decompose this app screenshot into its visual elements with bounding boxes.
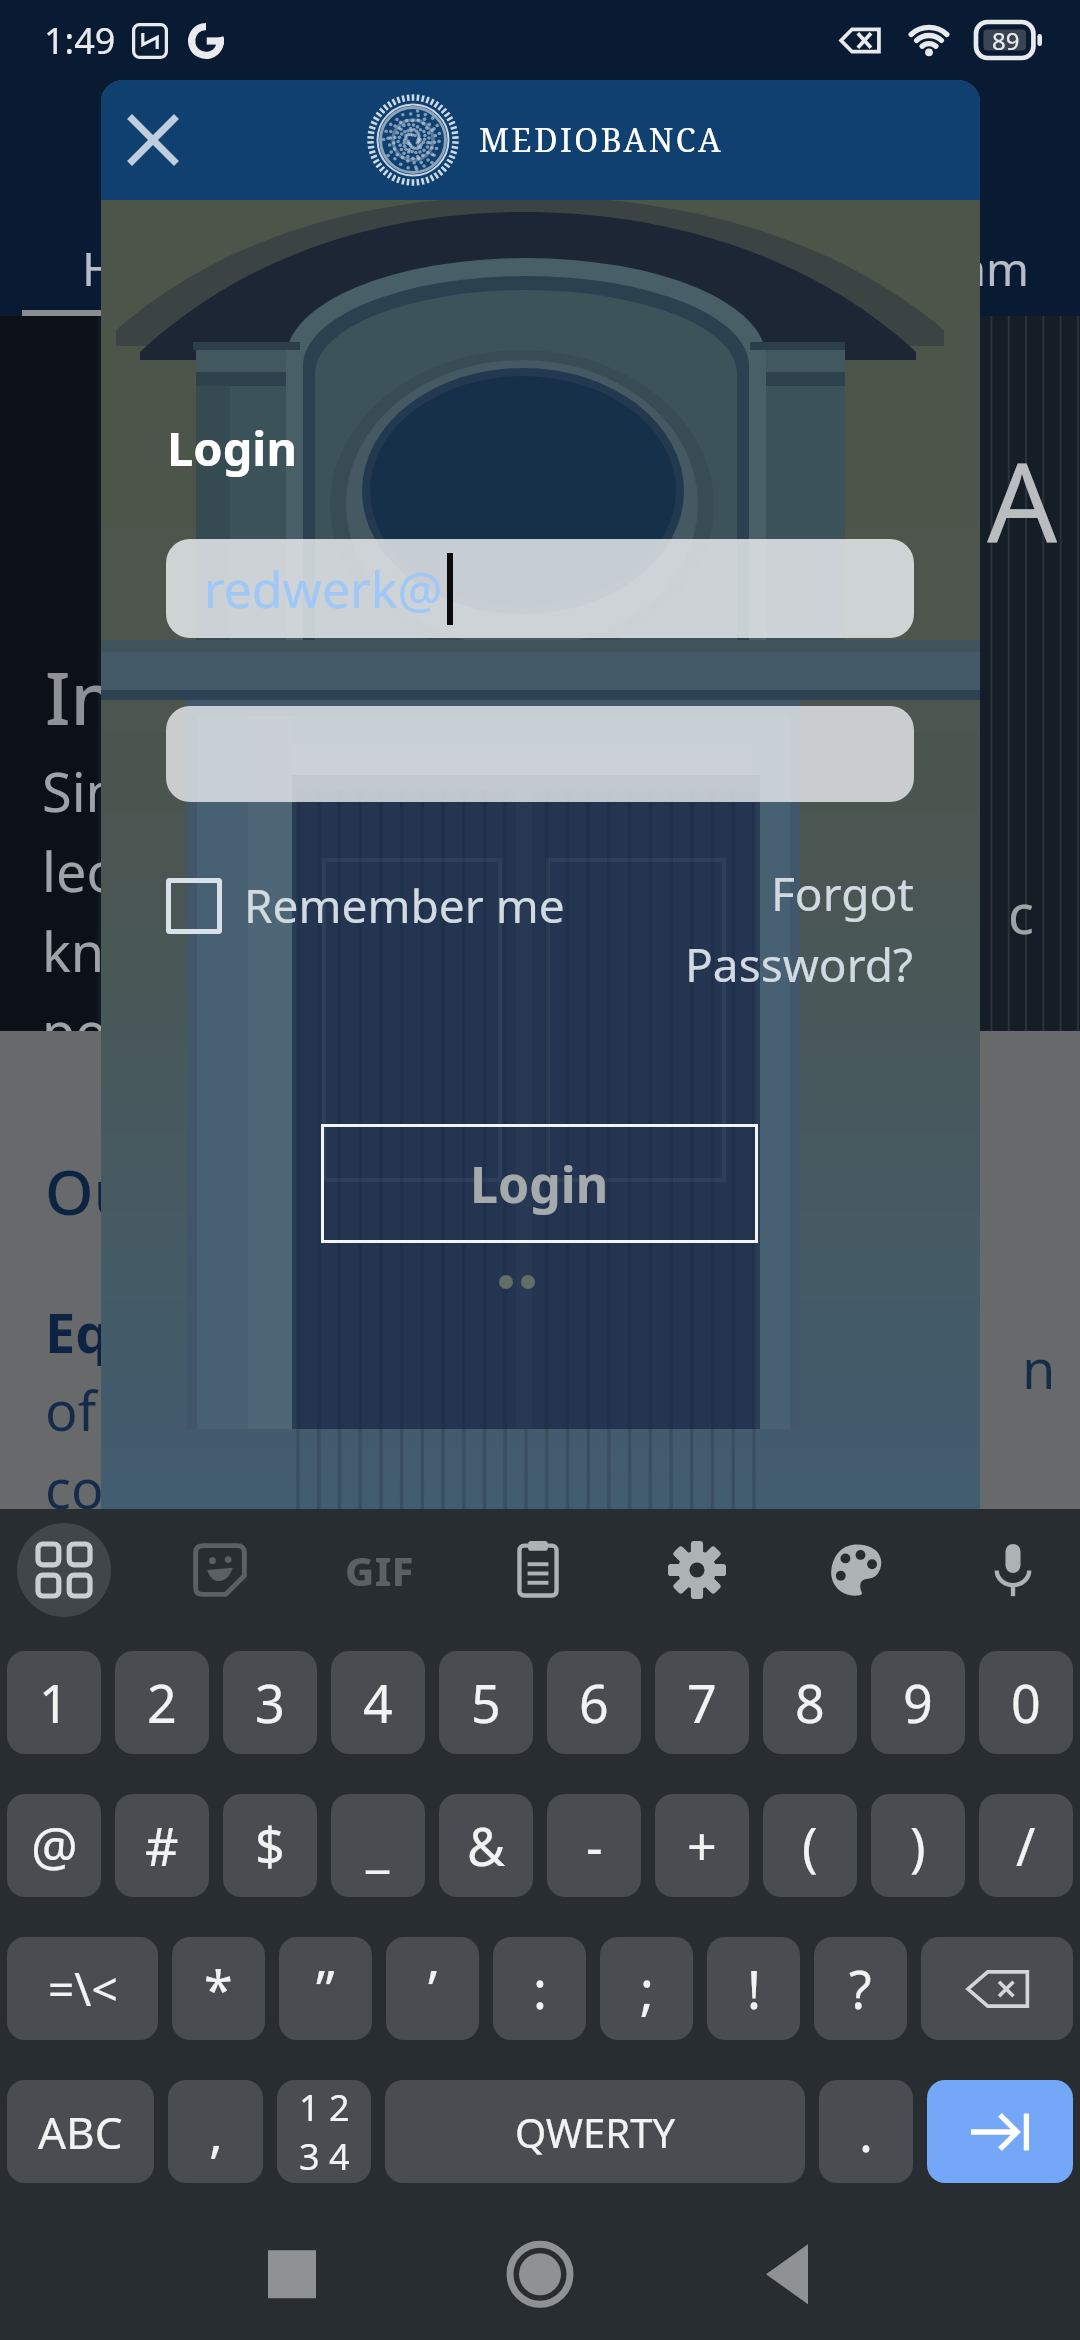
button[interactable]: . (819, 2080, 913, 2183)
button[interactable]: 4 (331, 1651, 425, 1754)
button[interactable]: GIF keyboard (330, 1527, 430, 1613)
staticText: 6 (579, 1667, 609, 1738)
staticText: 8 (795, 1667, 825, 1738)
staticText: * (204, 1953, 233, 2024)
button[interactable]: ABC (7, 2080, 154, 2183)
staticText: Password? (685, 933, 914, 996)
button[interactable] (166, 706, 914, 802)
staticText: Sin (42, 754, 119, 828)
staticText: Forgot (771, 862, 914, 925)
button[interactable]: Forgot (614, 862, 914, 996)
staticText: # (145, 1810, 179, 1881)
staticText: Home (82, 237, 213, 300)
staticText: 4 (363, 1667, 393, 1738)
button[interactable]: =\< (7, 1937, 158, 2040)
button[interactable]: / (979, 1794, 1073, 1897)
staticText: 2 (147, 1667, 177, 1738)
button[interactable]: ! (707, 1937, 800, 2040)
staticText: ” (316, 1953, 335, 2024)
staticText: Equ (45, 1295, 145, 1369)
button[interactable]: 8 (763, 1651, 857, 1754)
staticText: util (45, 1529, 126, 1603)
staticText: $ (255, 1810, 285, 1881)
button[interactable]: * (172, 1937, 265, 2040)
button[interactable]: ” (279, 1937, 372, 2040)
staticText: ? (849, 1953, 872, 2024)
button[interactable]: + (655, 1794, 749, 1897)
staticText: GIF (345, 1543, 415, 1597)
staticText: ( (802, 1810, 818, 1881)
button[interactable]: # (115, 1794, 209, 1897)
staticText: 1 2 (299, 2083, 350, 2132)
staticText: leo (42, 834, 120, 908)
staticText: _ (366, 1810, 390, 1881)
button[interactable]: Voice input (970, 1527, 1056, 1613)
staticText: 3 4 (299, 2132, 350, 2181)
staticText: + (687, 1810, 717, 1881)
button[interactable]: @ (7, 1794, 101, 1897)
button[interactable]: : (493, 1937, 586, 2040)
staticText: ; (640, 1953, 654, 2024)
staticText: 3 (255, 1667, 285, 1738)
staticText: 1 (39, 1667, 69, 1738)
staticText: 89 (992, 24, 1020, 57)
staticText: Login (167, 416, 297, 480)
button[interactable]: Settings (654, 1527, 740, 1613)
staticText: , (209, 2096, 223, 2167)
staticText: ’ (428, 1953, 438, 2024)
staticText: 1:49 (44, 16, 116, 65)
button[interactable]: redwerk@ (166, 539, 914, 638)
button[interactable]: Login (321, 1124, 758, 1243)
staticText: c (1008, 876, 1034, 950)
button[interactable]: 7 (655, 1651, 749, 1754)
button[interactable]: 0 (979, 1651, 1073, 1754)
staticText: n (1022, 1331, 1056, 1405)
staticText: . (859, 2096, 873, 2167)
button[interactable]: ) (871, 1794, 965, 1897)
staticText: =\< (48, 1957, 118, 2020)
button[interactable]: ; (600, 1937, 693, 2040)
staticText: kno (42, 914, 137, 988)
staticText: redwerk@ (204, 555, 443, 623)
button[interactable]: Keyboard apps (17, 1523, 111, 1617)
button[interactable]: & (439, 1794, 533, 1897)
button[interactable]: 6 (547, 1651, 641, 1754)
button[interactable]: ? (814, 1937, 907, 2040)
button[interactable]: 2 (115, 1651, 209, 1754)
button[interactable]: _ (331, 1794, 425, 1897)
button[interactable]: 5 (439, 1651, 533, 1754)
button[interactable]: Stickers (177, 1527, 263, 1613)
staticText: 7 (687, 1667, 717, 1738)
button[interactable]: ’ (386, 1937, 479, 2040)
button[interactable]: 1 (7, 1651, 101, 1754)
button[interactable]: Delete (921, 1937, 1073, 2040)
button[interactable]: Next (927, 2080, 1073, 2183)
staticText: @ (31, 1810, 78, 1881)
button[interactable]: QWERTY (385, 2080, 805, 2183)
button[interactable]: Remember me (166, 874, 565, 937)
button[interactable]: - (547, 1794, 641, 1897)
button[interactable]: , (168, 2080, 263, 2183)
staticText: co (45, 1451, 104, 1525)
button[interactable]: 9 (871, 1651, 965, 1754)
button[interactable]: Numbers (277, 2080, 371, 2183)
staticText: A (987, 424, 1058, 574)
staticText: QWERTY (515, 2105, 676, 2159)
staticText: 9 (903, 1667, 933, 1738)
button[interactable]: ( (763, 1794, 857, 1897)
staticText: : (533, 1953, 547, 2024)
staticText: & (467, 1810, 506, 1881)
button[interactable]: Clipboard (495, 1527, 581, 1613)
button[interactable]: 3 (223, 1651, 317, 1754)
staticText: / (1016, 1810, 1036, 1881)
button[interactable]: Close (105, 92, 201, 188)
staticText: Team (912, 237, 1030, 300)
button[interactable]: Theme (814, 1527, 900, 1613)
staticText: ABC (38, 2102, 123, 2162)
staticText: Login (470, 1150, 609, 1218)
staticText: of 2 (45, 1373, 142, 1447)
button[interactable]: $ (223, 1794, 317, 1897)
staticText: Ou (45, 1149, 133, 1233)
staticText: In (45, 648, 116, 746)
staticText: 0 (1011, 1667, 1041, 1738)
